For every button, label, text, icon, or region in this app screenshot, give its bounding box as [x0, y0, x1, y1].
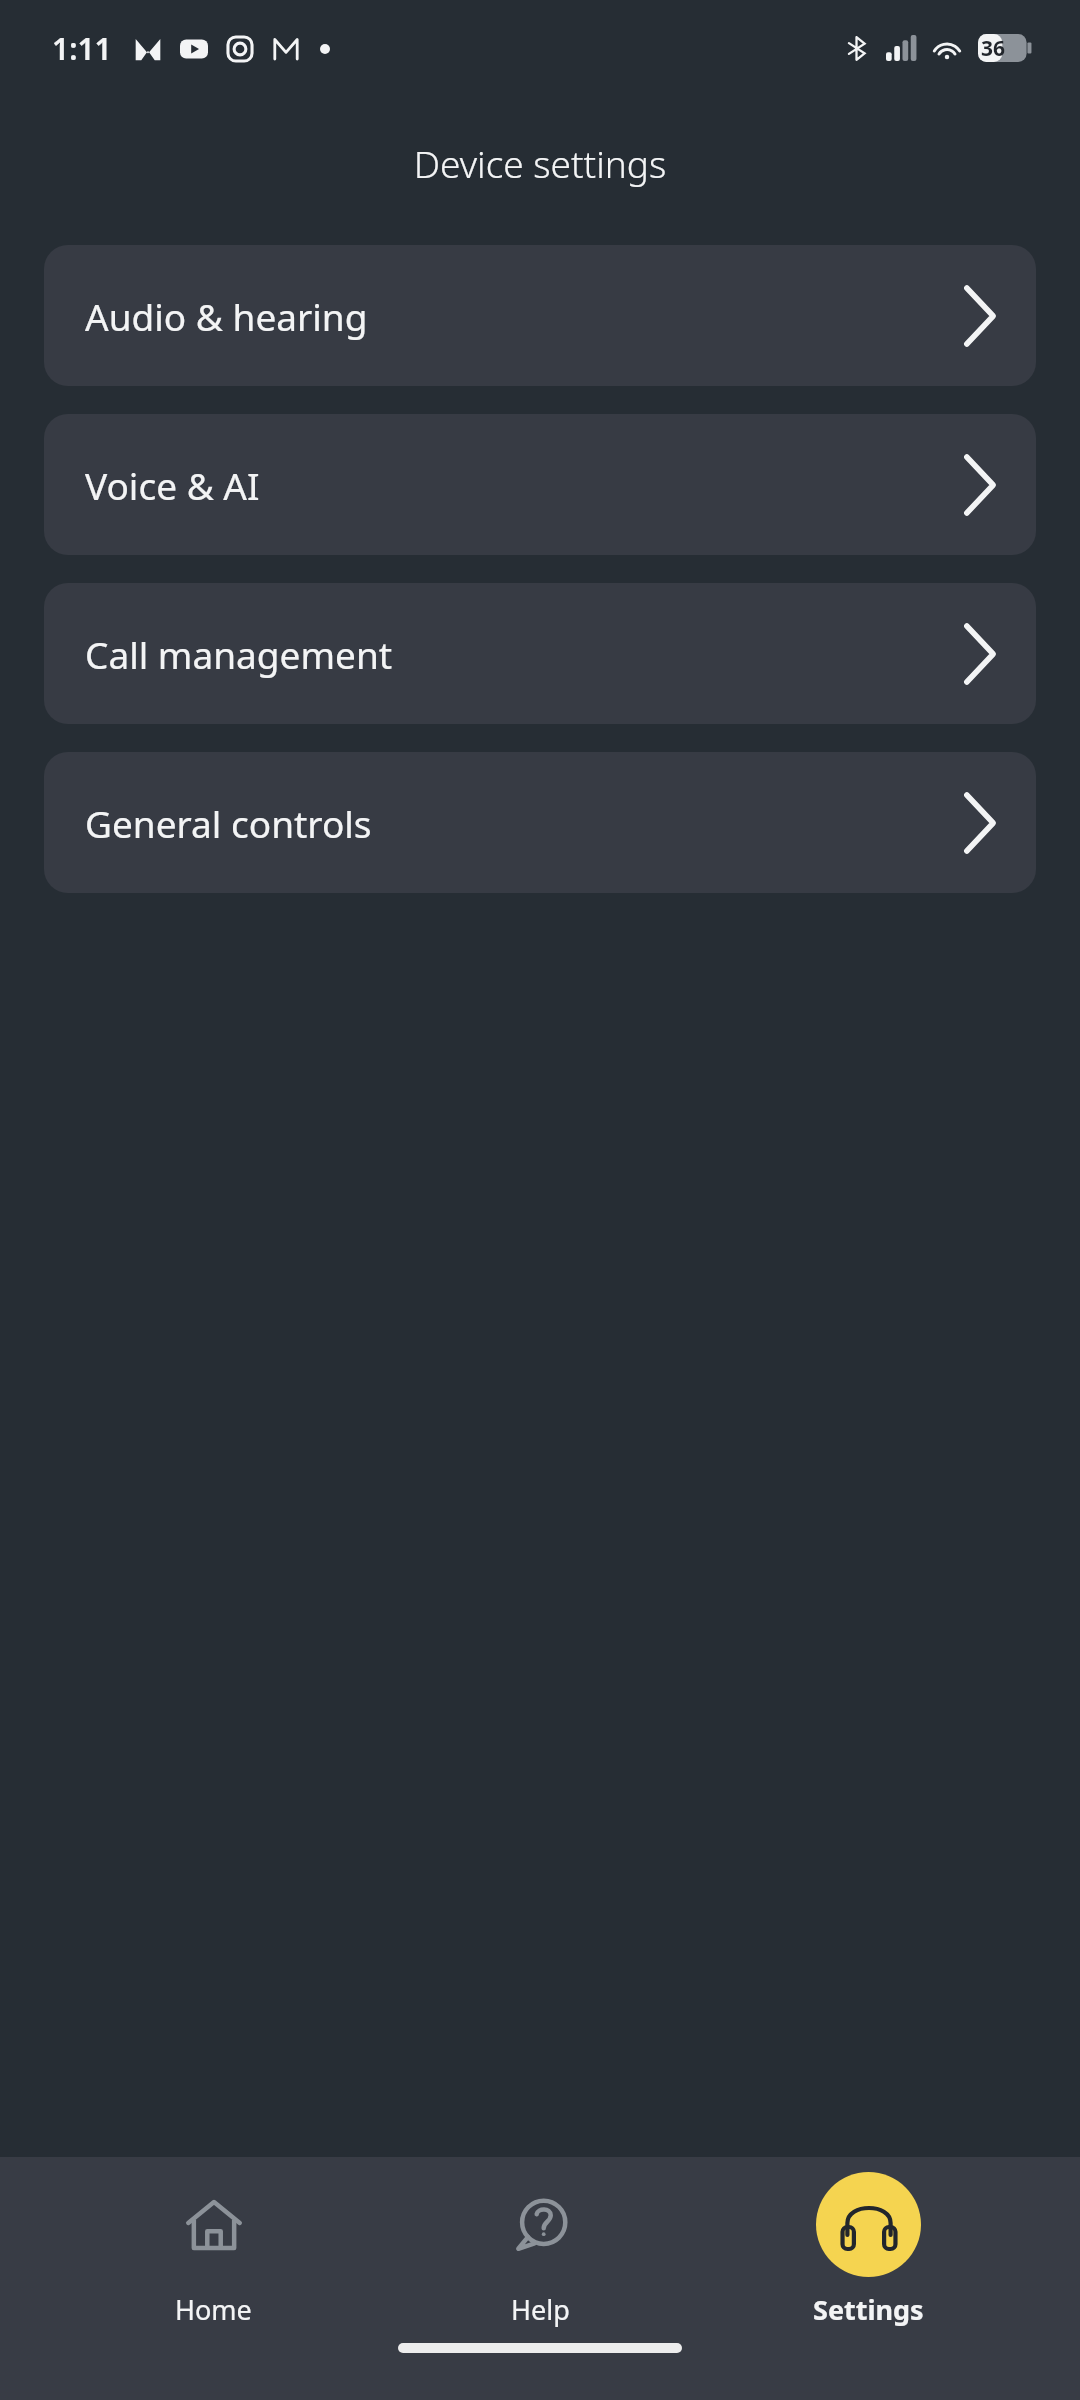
staticText: Call management [85, 629, 965, 679]
staticText: 36 [981, 34, 1006, 63]
button[interactable]: Voice & AI [44, 414, 1036, 555]
button[interactable]: Home [98, 2172, 328, 2328]
button[interactable]: General controls [44, 752, 1036, 893]
staticText: 1:11 [52, 28, 112, 69]
button[interactable]: Help [425, 2172, 655, 2328]
staticText: Help [511, 2291, 570, 2328]
staticText: General controls [85, 798, 965, 848]
button[interactable]: Audio & hearing [44, 245, 1036, 386]
staticText: Device settings [0, 138, 1080, 188]
button[interactable]: Settings [753, 2172, 983, 2328]
button[interactable]: Call management [44, 583, 1036, 724]
staticText: Home [175, 2291, 252, 2328]
staticText: Settings [813, 2291, 924, 2328]
staticText: Voice & AI [85, 460, 965, 510]
staticText: Audio & hearing [85, 291, 965, 341]
